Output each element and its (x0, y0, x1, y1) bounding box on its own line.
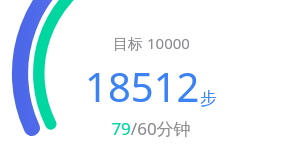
staticText: 79/60分钟 (111, 117, 191, 140)
button[interactable]: Step goal progress ring (0, 0, 302, 158)
staticText: 目标 10000 (113, 33, 190, 53)
staticText: 步 (200, 88, 217, 109)
staticText: 18512 (85, 59, 200, 113)
